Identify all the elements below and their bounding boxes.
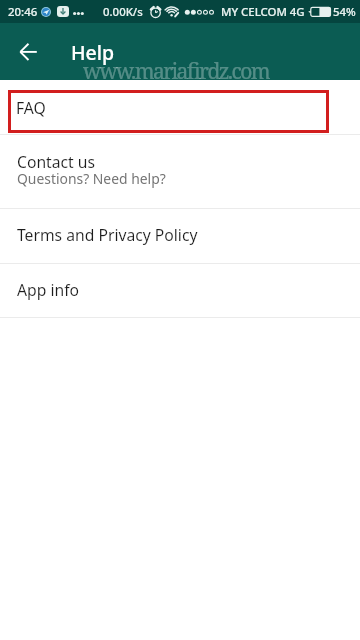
- staticText: 0.00K/s: [103, 4, 143, 20]
- button[interactable]: App info: [0, 264, 360, 317]
- staticText: MY CELCOM 4G: [221, 4, 305, 20]
- staticText: www.mariafirdz.com: [83, 57, 269, 80]
- button[interactable]: Terms and Privacy Policy: [0, 209, 360, 263]
- staticText: FAQ: [16, 97, 46, 118]
- staticText: Contact us: [17, 151, 96, 172]
- button[interactable]: FAQ: [0, 80, 360, 134]
- staticText: Terms and Privacy Policy: [17, 224, 198, 245]
- staticText: 54%: [333, 4, 356, 20]
- button[interactable]: Back: [6, 30, 50, 74]
- staticText: App info: [17, 279, 80, 300]
- button[interactable]: Contact us: [0, 135, 360, 208]
- staticText: Questions? Need help?: [17, 169, 166, 188]
- staticText: Help: [71, 39, 115, 66]
- staticText: 20:46: [8, 4, 38, 20]
